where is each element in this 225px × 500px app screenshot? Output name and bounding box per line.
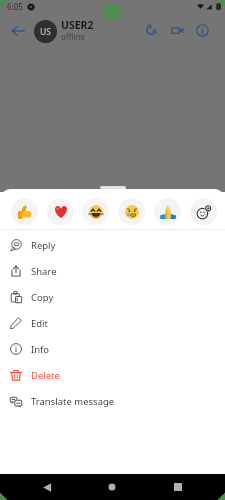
button[interactable]: Delete bbox=[0, 362, 225, 388]
button[interactable]: Translate message bbox=[0, 388, 225, 414]
button[interactable]: Back bbox=[35, 475, 59, 499]
button[interactable]: Laugh bbox=[82, 198, 109, 225]
button[interactable]: Info bbox=[0, 336, 225, 362]
button[interactable]: Share bbox=[0, 258, 225, 284]
button[interactable]: US bbox=[34, 20, 57, 43]
staticText: Translate message bbox=[31, 395, 115, 408]
button[interactable]: Sad bbox=[118, 198, 145, 225]
button[interactable]: Recent apps bbox=[166, 475, 190, 499]
staticText: 6:05 bbox=[7, 1, 23, 12]
staticText: Copy bbox=[31, 291, 54, 304]
button[interactable]: Home bbox=[100, 475, 124, 499]
staticText: US bbox=[40, 26, 51, 38]
staticText: Share bbox=[31, 265, 57, 278]
button[interactable]: Back bbox=[4, 17, 31, 44]
button[interactable]: Voice call bbox=[137, 17, 163, 43]
button[interactable]: Edit bbox=[0, 310, 225, 336]
button[interactable]: Thumbs up bbox=[11, 198, 38, 225]
button[interactable]: Info bbox=[189, 17, 215, 43]
button[interactable]: Copy bbox=[0, 284, 225, 310]
staticText: Edit bbox=[31, 317, 49, 330]
button[interactable]: Video call bbox=[164, 17, 190, 43]
staticText: offline bbox=[61, 31, 85, 42]
staticText: USER2 bbox=[61, 18, 94, 32]
button[interactable]: More reactions bbox=[190, 198, 217, 225]
staticText: Info bbox=[31, 343, 50, 356]
button[interactable]: Love bbox=[47, 198, 74, 225]
staticText: Delete bbox=[31, 369, 60, 382]
staticText: Reply bbox=[31, 239, 56, 252]
button[interactable]: Reply bbox=[0, 232, 225, 258]
button[interactable]: Pray bbox=[154, 198, 181, 225]
button[interactable]: USER2 bbox=[61, 18, 133, 43]
